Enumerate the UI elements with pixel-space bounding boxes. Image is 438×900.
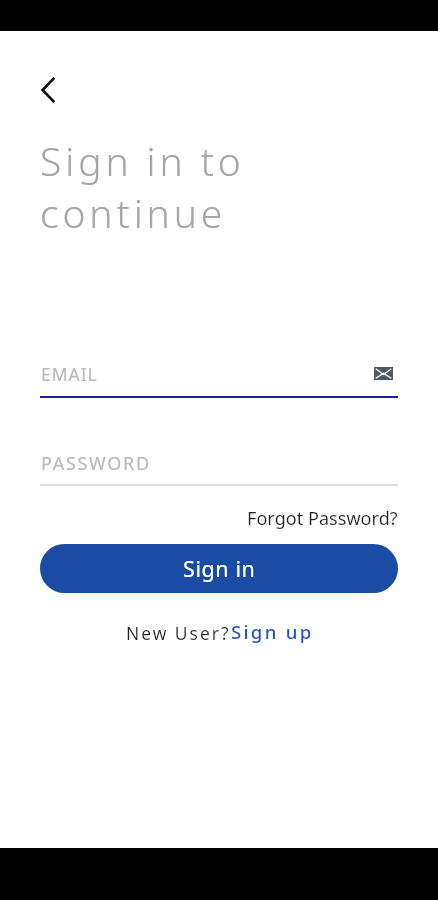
button[interactable]: Sign in (40, 544, 398, 593)
button[interactable]: Sign up (231, 619, 314, 644)
staticText: PASSWORD (41, 451, 151, 476)
button[interactable]: Forgot Password? (246, 505, 398, 531)
staticText: New User? (126, 621, 231, 645)
staticText: Sign in (183, 554, 256, 583)
staticText: Sign up (231, 619, 314, 644)
button[interactable]: Back (26, 68, 70, 112)
staticText: Forgot Password? (247, 506, 398, 531)
staticText: Sign in to continue (40, 134, 400, 239)
button[interactable]: Email (374, 367, 393, 380)
staticText: EMAIL (41, 362, 98, 386)
